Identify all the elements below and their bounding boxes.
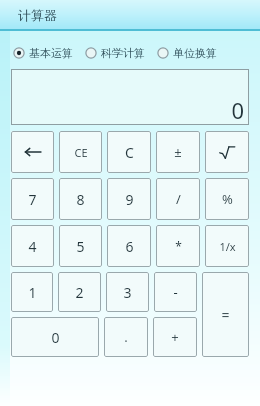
staticText: -: [173, 283, 178, 301]
button[interactable]: 0: [11, 317, 99, 357]
button[interactable]: 2: [58, 272, 101, 312]
button[interactable]: 单位换算: [157, 46, 217, 60]
button[interactable]: 1/x: [205, 225, 249, 267]
staticText: 8: [76, 190, 85, 209]
staticText: 3: [123, 283, 132, 302]
staticText: 1/x: [219, 239, 236, 254]
staticText: 1: [28, 283, 37, 302]
staticText: 0: [231, 95, 244, 125]
staticText: 7: [28, 190, 37, 209]
staticText: 4: [28, 237, 37, 256]
button[interactable]: *: [156, 225, 200, 267]
button[interactable]: 基本运算: [13, 46, 73, 60]
button[interactable]: Backspace: [11, 131, 54, 173]
button[interactable]: 4: [11, 225, 54, 267]
button[interactable]: 8: [59, 178, 102, 220]
button[interactable]: /: [156, 178, 200, 220]
button[interactable]: 3: [106, 272, 149, 312]
staticText: 0: [51, 328, 60, 347]
staticText: 6: [125, 237, 134, 256]
button[interactable]: 9: [107, 178, 151, 220]
button[interactable]: =: [202, 272, 249, 357]
staticText: 9: [125, 190, 134, 209]
staticText: 5: [76, 237, 85, 256]
button[interactable]: +: [153, 317, 197, 357]
staticText: 单位换算: [173, 46, 217, 60]
button[interactable]: 科学计算: [85, 46, 145, 60]
staticText: 科学计算: [101, 46, 145, 60]
staticText: C: [125, 143, 134, 162]
button[interactable]: Square root: [205, 131, 249, 173]
staticText: *: [175, 238, 182, 254]
button[interactable]: C: [107, 131, 151, 173]
button[interactable]: 5: [59, 225, 102, 267]
staticText: =: [221, 305, 230, 324]
button[interactable]: 1: [11, 272, 53, 312]
button[interactable]: CE: [59, 131, 102, 173]
button[interactable]: -: [154, 272, 197, 312]
staticText: CE: [74, 145, 88, 160]
staticText: .: [124, 328, 128, 346]
button[interactable]: %: [205, 178, 249, 220]
button[interactable]: .: [104, 317, 148, 357]
button[interactable]: ±: [156, 131, 200, 173]
staticText: 2: [75, 283, 84, 302]
staticText: +: [171, 328, 179, 346]
staticText: 计算器: [18, 7, 57, 23]
staticText: 基本运算: [29, 46, 73, 60]
staticText: %: [222, 190, 233, 208]
button[interactable]: 6: [107, 225, 151, 267]
button[interactable]: 7: [11, 178, 54, 220]
staticText: /: [176, 190, 181, 208]
staticText: ±: [174, 143, 182, 161]
